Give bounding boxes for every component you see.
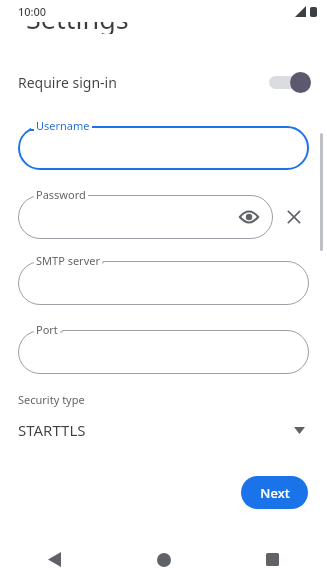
button[interactable]: Next: [241, 476, 308, 509]
button[interactable]: Back: [0, 537, 109, 582]
staticText: Require sign-in: [18, 73, 269, 92]
staticText: STARTTLS: [18, 420, 294, 440]
button[interactable]: Recent apps: [218, 537, 327, 582]
button[interactable]: Home: [109, 537, 218, 582]
staticText: 10:00: [18, 4, 47, 19]
staticText: Username: [36, 118, 90, 133]
staticText: Security type: [18, 392, 85, 407]
button[interactable]: Require sign-in: [0, 56, 327, 108]
staticText: Settings: [26, 22, 129, 34]
staticText: Next: [260, 484, 290, 502]
staticText: Password: [36, 187, 86, 202]
button[interactable]: Security type: [0, 392, 327, 440]
button[interactable]: Require sign-in toggle: [269, 71, 311, 93]
button[interactable]: Show password: [18, 187, 273, 239]
button[interactable]: Port: [18, 322, 309, 374]
button[interactable]: Clear: [283, 206, 305, 228]
button[interactable]: Show password: [239, 207, 259, 227]
staticText: Port: [36, 322, 58, 337]
button[interactable]: SMTP server: [18, 253, 309, 305]
button[interactable]: Username: [18, 118, 309, 170]
staticText: SMTP server: [36, 253, 100, 268]
